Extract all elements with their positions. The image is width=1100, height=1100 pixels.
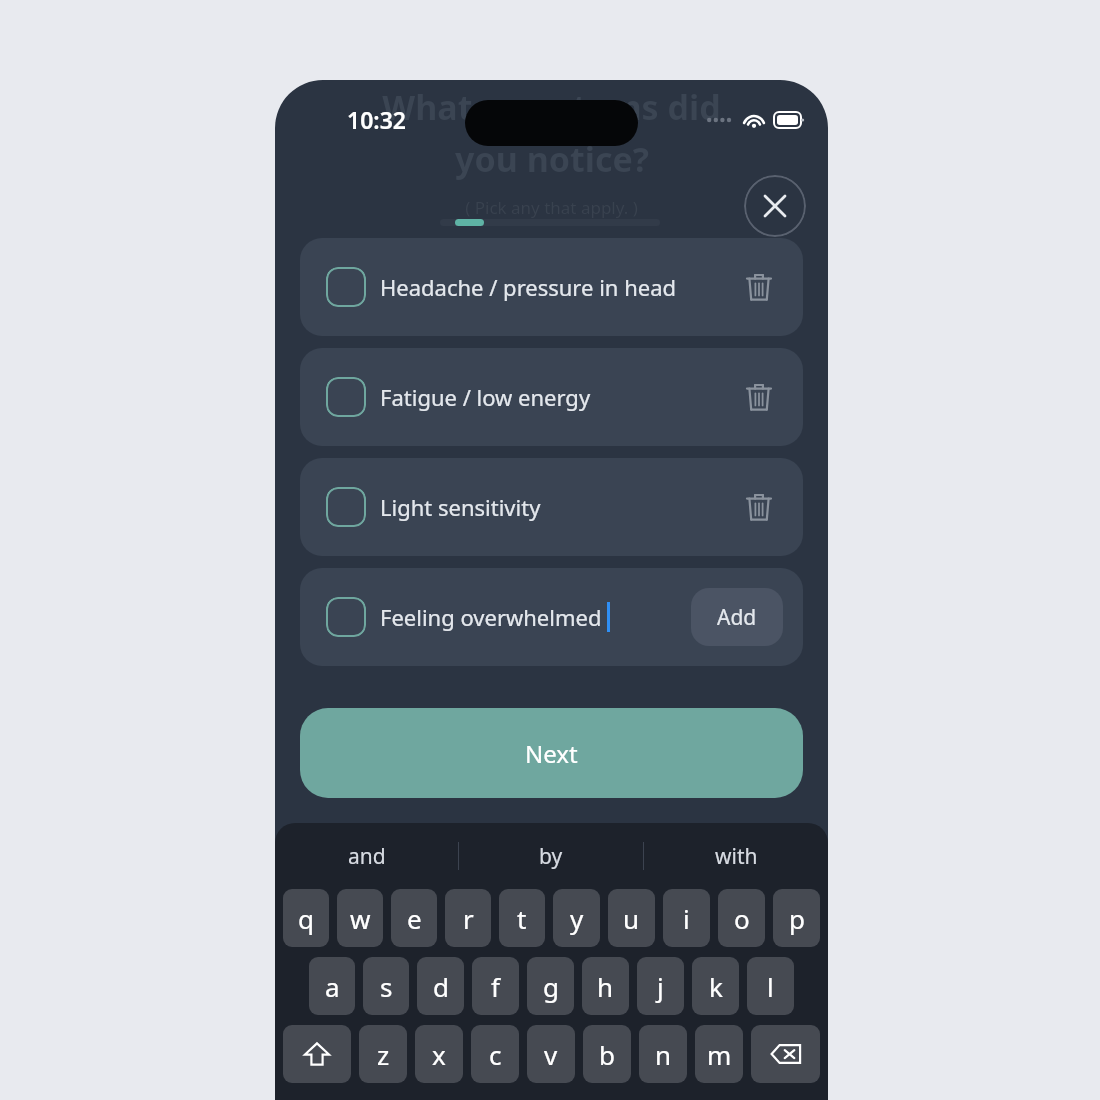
button[interactable]: l (747, 957, 794, 1015)
staticText: What symptoms did (382, 84, 721, 130)
staticText: Add (717, 603, 757, 632)
staticText: ( Pick any that apply. ) (465, 196, 638, 219)
button[interactable]: Toggle Light sensitivity (326, 487, 366, 527)
staticText: Fatigue / low energy (380, 382, 591, 412)
button[interactable]: b (583, 1025, 631, 1083)
button[interactable]: s (363, 957, 409, 1015)
staticText: b (599, 1037, 615, 1072)
button[interactable]: h (582, 957, 629, 1015)
button[interactable]: p (773, 889, 820, 947)
staticText: Light sensitivity (380, 492, 541, 522)
button[interactable]: Toggle Feeling overwhelmed (300, 568, 803, 666)
button[interactable]: with (644, 823, 828, 889)
staticText: Headache / pressure in head (380, 272, 677, 302)
staticText: r (463, 901, 474, 936)
button[interactable]: Close (744, 175, 806, 237)
staticText: i (683, 901, 690, 936)
staticText: k (709, 969, 723, 1004)
staticText: j (657, 969, 664, 1004)
staticText: d (433, 969, 449, 1004)
staticText: e (407, 901, 422, 936)
button[interactable]: Add (691, 588, 783, 646)
button[interactable]: Next (300, 708, 803, 798)
button[interactable]: Toggle Fatigue / low energy (300, 348, 803, 446)
staticText: a (325, 969, 340, 1004)
button[interactable]: e (391, 889, 437, 947)
staticText: t (517, 901, 527, 936)
button[interactable]: v (527, 1025, 575, 1083)
staticText: s (380, 969, 393, 1004)
button[interactable]: Toggle Light sensitivity (300, 458, 803, 556)
staticText: n (655, 1037, 672, 1072)
button[interactable]: Delete Light sensitivity (737, 485, 781, 529)
button[interactable]: z (359, 1025, 407, 1083)
button[interactable]: Toggle Headache / pressure in head (300, 238, 803, 336)
button[interactable]: Backspace (751, 1025, 820, 1083)
button[interactable]: o (718, 889, 765, 947)
button[interactable]: t (499, 889, 545, 947)
button[interactable]: d (417, 957, 464, 1015)
staticText: p (789, 901, 805, 936)
button[interactable]: j (637, 957, 684, 1015)
button[interactable]: r (445, 889, 491, 947)
button[interactable]: by (459, 823, 643, 889)
button[interactable]: w (337, 889, 383, 947)
button[interactable]: Toggle Headache / pressure in head (326, 267, 366, 307)
staticText: h (597, 969, 614, 1004)
button[interactable]: m (695, 1025, 743, 1083)
button[interactable]: k (692, 957, 739, 1015)
button[interactable]: y (553, 889, 600, 947)
staticText: z (377, 1037, 390, 1072)
button[interactable]: Shift (283, 1025, 351, 1083)
staticText: w (350, 901, 371, 936)
button[interactable]: n (639, 1025, 687, 1083)
button[interactable]: c (471, 1025, 519, 1083)
button[interactable]: i (663, 889, 710, 947)
staticText: l (767, 969, 774, 1004)
button[interactable]: Toggle Feeling overwhelmed (326, 597, 366, 637)
button[interactable]: Delete Fatigue / low energy (737, 375, 781, 419)
button[interactable]: and (275, 823, 458, 889)
staticText: v (544, 1037, 558, 1072)
staticText: g (543, 969, 559, 1004)
button[interactable]: f (472, 957, 519, 1015)
staticText: f (491, 969, 500, 1004)
staticText: and (348, 842, 386, 871)
staticText: u (623, 901, 640, 936)
staticText: Feeling overwhelmed (380, 602, 602, 632)
staticText: 10:32 (347, 104, 406, 135)
staticText: you notice? (455, 136, 649, 182)
button[interactable]: g (527, 957, 574, 1015)
staticText: q (298, 901, 314, 936)
staticText: y (570, 901, 584, 936)
staticText: m (707, 1037, 732, 1072)
staticText: c (489, 1037, 502, 1072)
button[interactable]: q (283, 889, 329, 947)
button[interactable]: u (608, 889, 655, 947)
button[interactable]: Delete Headache / pressure in head (737, 265, 781, 309)
button[interactable]: Toggle Fatigue / low energy (326, 377, 366, 417)
staticText: with (715, 842, 758, 871)
staticText: o (734, 901, 750, 936)
button[interactable]: a (309, 957, 355, 1015)
staticText: by (539, 842, 563, 871)
staticText: Next (525, 737, 578, 770)
staticText: x (432, 1037, 446, 1072)
button[interactable]: x (415, 1025, 463, 1083)
